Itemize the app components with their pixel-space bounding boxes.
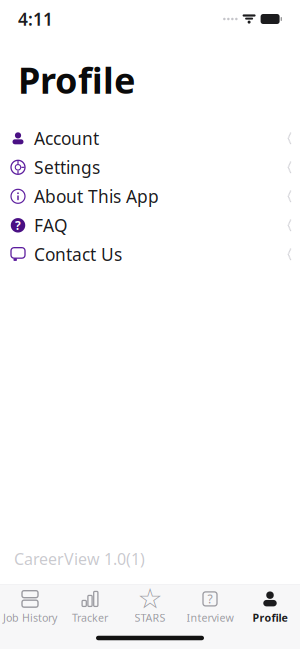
staticText: Interview: [186, 610, 233, 625]
staticText: STARS: [134, 610, 165, 625]
staticText: ?: [15, 217, 21, 233]
staticText: ☆: [137, 583, 162, 615]
staticText: Contact Us: [34, 243, 122, 266]
button[interactable]: Tracker: [60, 584, 120, 628]
button[interactable]: Settings: [0, 153, 300, 182]
staticText: Job History: [3, 610, 57, 625]
button[interactable]: Job History: [0, 584, 60, 628]
button[interactable]: ?: [180, 584, 240, 628]
button[interactable]: Profile: [240, 584, 300, 628]
staticText: About This App: [34, 185, 159, 208]
button[interactable]: About This App: [0, 182, 300, 211]
button[interactable]: Contact Us: [0, 240, 300, 269]
staticText: CareerView 1.0(1): [14, 548, 145, 569]
button[interactable]: ☆: [120, 584, 180, 628]
staticText: Profile: [18, 56, 135, 104]
button[interactable]: Account: [0, 124, 300, 153]
staticText: Account: [34, 127, 99, 150]
staticText: Profile: [252, 610, 287, 625]
staticText: FAQ: [34, 214, 68, 237]
button[interactable]: ?: [0, 211, 300, 240]
staticText: Tracker: [72, 610, 108, 625]
staticText: Settings: [34, 156, 100, 179]
staticText: ?: [207, 591, 212, 607]
staticText: 4:11: [18, 7, 53, 30]
